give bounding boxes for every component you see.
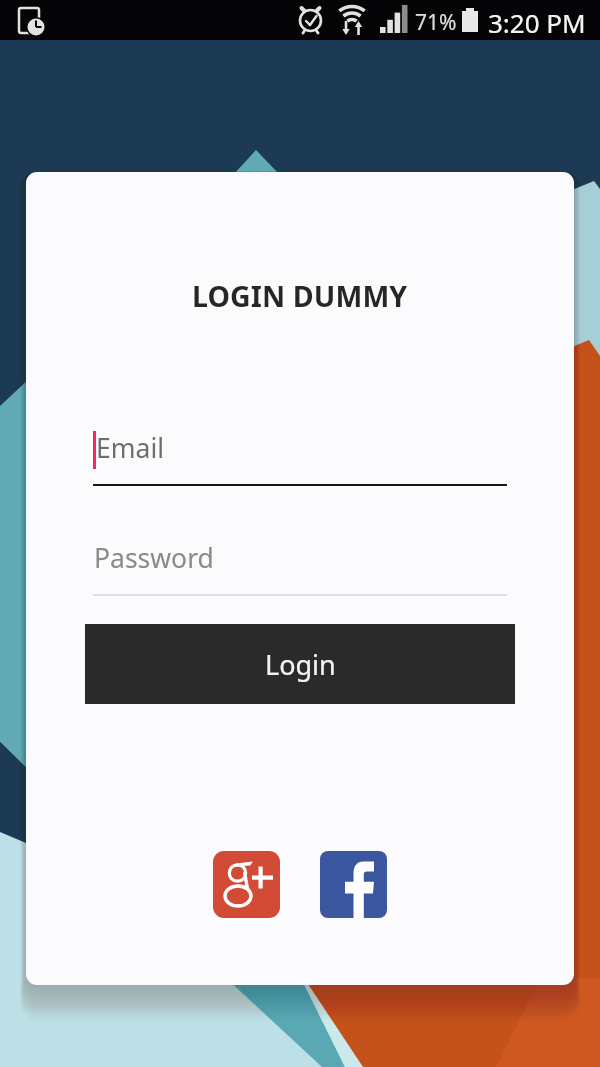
- staticText: Password: [94, 540, 214, 576]
- staticText: LOGIN DUMMY: [192, 277, 408, 316]
- button[interactable]: Sign in with Google Plus: [213, 851, 280, 918]
- staticText: Email: [96, 430, 165, 466]
- button[interactable]: Email: [88, 422, 508, 492]
- button[interactable]: Password: [88, 532, 508, 602]
- button[interactable]: Login: [85, 624, 515, 704]
- button[interactable]: Sign in with Facebook: [320, 851, 387, 918]
- staticText: 3:20 PM: [488, 5, 586, 40]
- staticText: Login: [265, 646, 336, 683]
- staticText: 71%: [415, 8, 457, 37]
